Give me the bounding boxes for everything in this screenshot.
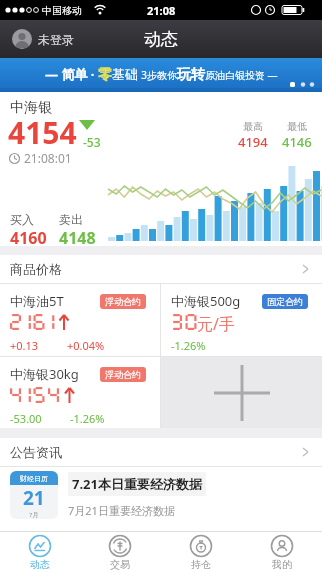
button[interactable]: 公告资讯 <box>0 438 322 466</box>
staticText: -1.26% <box>70 411 105 426</box>
staticText: 动态 <box>144 29 178 50</box>
staticText: 未登录 <box>38 32 74 47</box>
button[interactable]: 持仓 <box>160 534 241 571</box>
staticText: 中国移动 <box>42 4 82 17</box>
staticText: 4146 <box>282 133 312 151</box>
staticText: 21 <box>23 485 45 511</box>
staticText: -1.26% <box>171 338 206 353</box>
button[interactable]: 我的 <box>241 534 322 571</box>
staticText: 21:08:01 <box>24 150 72 166</box>
staticText: 7.21本日重要经济数据 <box>72 475 202 493</box>
button[interactable]: 商品价格 <box>0 255 322 283</box>
staticText: 持仓 <box>191 558 211 571</box>
button[interactable]: 中海银30kg <box>0 357 160 428</box>
staticText: 7月21日重要经济数据 <box>68 503 175 518</box>
button[interactable]: 中海银500g <box>161 284 322 356</box>
staticText: 21:08 <box>147 3 176 18</box>
staticText: 浮动合约 <box>105 369 141 380</box>
staticText: 最低 <box>287 120 307 133</box>
staticText: 中海银500g <box>171 292 241 310</box>
staticText: +0.13 <box>10 338 39 353</box>
staticText: 浮动合约 <box>105 296 141 307</box>
staticText: -53 <box>83 134 101 150</box>
staticText: 卖出 <box>59 212 83 227</box>
staticText: 我的 <box>272 558 292 571</box>
staticText: 最高 <box>243 120 263 133</box>
button[interactable]: 未登录 <box>12 29 74 49</box>
button[interactable] <box>161 357 322 428</box>
staticText: 7月 <box>29 511 39 519</box>
staticText: -53.00 <box>10 411 42 426</box>
staticText: 4148 <box>59 227 96 246</box>
staticText: 财经日历 <box>20 474 48 483</box>
staticText: — 简单 · 零基础 3步教你玩转原油白银投资 — <box>45 65 278 83</box>
staticText: 固定合约 <box>267 296 303 307</box>
staticText: 4154 <box>8 112 77 153</box>
staticText: 中海油5T <box>10 292 64 310</box>
button[interactable]: 交易 <box>80 534 160 571</box>
staticText: 中海银30kg <box>10 365 79 383</box>
staticText: 商品价格 <box>10 261 62 277</box>
staticText: 买入 <box>10 212 34 227</box>
staticText: 交易 <box>110 558 130 571</box>
staticText: 4194 <box>238 133 268 151</box>
staticText: 4160 <box>10 227 47 246</box>
button[interactable]: 财经日历 <box>0 467 322 531</box>
staticText: +0.04% <box>67 338 105 353</box>
button[interactable]: 中海油5T <box>0 284 160 356</box>
staticText: 元/手 <box>197 313 235 335</box>
button[interactable]: — 简单 · 零基础 3步教你玩转原油白银投资 — <box>0 58 322 92</box>
button[interactable]: 动态 <box>0 534 80 571</box>
staticText: 动态 <box>30 558 50 571</box>
staticText: 公告资讯 <box>10 444 62 460</box>
staticText: 中海银 <box>10 99 52 117</box>
